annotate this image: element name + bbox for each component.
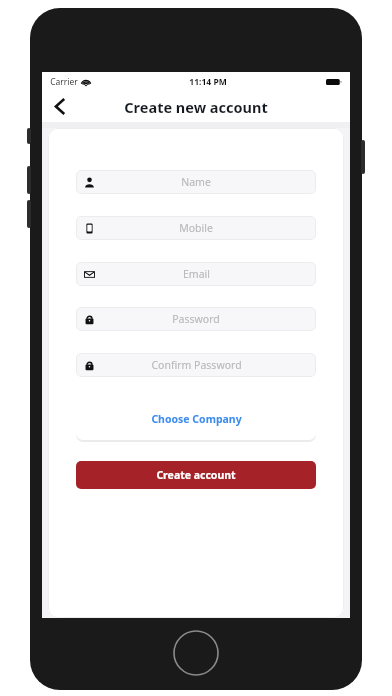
button[interactable]: Password	[76, 307, 316, 331]
button[interactable]: Name	[76, 170, 316, 194]
staticText: 11:14 PM	[189, 76, 227, 88]
button[interactable]: Confirm Password	[76, 353, 316, 377]
staticText: Carrier	[50, 76, 78, 88]
button[interactable]: Choose Company	[76, 398, 316, 440]
staticText: Create account	[156, 468, 236, 482]
staticText: Create new account	[124, 97, 268, 117]
staticText: Confirm Password	[151, 358, 242, 372]
staticText: Choose Company	[151, 412, 242, 426]
staticText: Name	[181, 175, 211, 189]
button[interactable]: Back	[44, 91, 74, 122]
button[interactable]: Create account	[76, 461, 316, 489]
staticText: Email	[183, 267, 210, 281]
button[interactable]: Email	[76, 262, 316, 286]
button[interactable]: Mobile	[76, 216, 316, 240]
staticText: Password	[172, 312, 220, 326]
staticText: Mobile	[179, 221, 213, 235]
other: Home	[173, 630, 219, 676]
